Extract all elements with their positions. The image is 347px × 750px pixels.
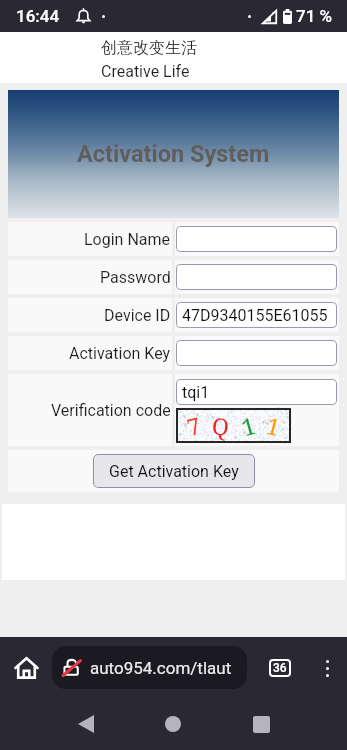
staticText: 7 [183, 409, 203, 442]
staticText: Activation Key [69, 344, 171, 363]
button[interactable]: Home [151, 702, 195, 746]
button[interactable]: auto954.com/tlaut [52, 646, 247, 689]
staticText: auto954.com/tlaut [90, 658, 232, 678]
staticText: Verification code [51, 401, 171, 420]
button[interactable]: More options [315, 656, 339, 680]
button[interactable]: Recent apps [239, 702, 283, 746]
staticText: 16:44 [16, 6, 60, 26]
staticText: Login Name [84, 230, 171, 249]
staticText: 71 % [296, 6, 333, 26]
staticText: 36 [273, 661, 287, 675]
button[interactable]: Refresh verification code [176, 408, 291, 443]
button[interactable]: Back [64, 702, 108, 746]
staticText: Activation System [77, 140, 270, 168]
staticText: Device ID [104, 306, 171, 325]
staticText: Creative Life [101, 62, 190, 81]
button[interactable]: 47D9340155E61055 [176, 302, 337, 328]
staticText: Password [100, 268, 171, 287]
staticText: 1 [238, 409, 259, 442]
button[interactable]: Switch tabs [269, 659, 291, 677]
staticText: 47D9340155E61055 [182, 306, 328, 325]
button[interactable]: Text field [176, 264, 337, 290]
staticText: 1 [263, 409, 283, 442]
staticText: 创意改变生活 [101, 38, 197, 58]
staticText: tqi1 [182, 383, 210, 402]
staticText: Get Activation Key [109, 462, 239, 481]
staticText: Q [211, 409, 231, 442]
button[interactable]: Text field [176, 226, 337, 252]
button[interactable]: Home [8, 649, 45, 686]
button[interactable]: tqi1 [176, 379, 337, 405]
button[interactable]: Get Activation Key [93, 454, 255, 488]
button[interactable]: Text field [176, 340, 337, 366]
